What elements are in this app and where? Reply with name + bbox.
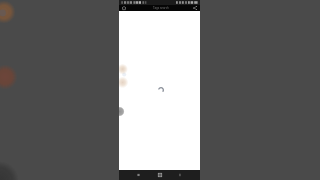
button[interactable]: Recents [177, 172, 182, 177]
button[interactable]: Home [157, 172, 163, 178]
button[interactable]: Home [121, 5, 127, 11]
staticText: Tags search [153, 6, 169, 10]
button[interactable]: Back [136, 172, 141, 177]
button[interactable]: Share [192, 5, 198, 11]
